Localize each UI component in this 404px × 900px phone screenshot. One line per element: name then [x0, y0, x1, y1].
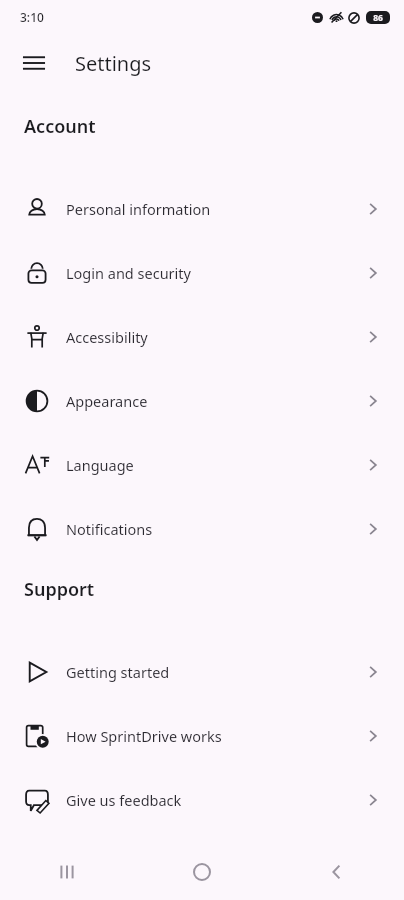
- staticText: Settings: [75, 50, 152, 77]
- staticText: Accessibility: [66, 327, 364, 347]
- staticText: 3:10: [20, 9, 44, 25]
- staticText: 86: [373, 12, 383, 24]
- button[interactable]: Home: [134, 848, 269, 896]
- staticText: Account: [24, 114, 96, 139]
- button[interactable]: Open navigation menu: [10, 39, 58, 87]
- button[interactable]: Recent apps: [0, 848, 134, 896]
- button[interactable]: Login and security: [0, 241, 404, 305]
- staticText: Login and security: [66, 263, 364, 283]
- button[interactable]: Accessibility: [0, 305, 404, 369]
- button[interactable]: Appearance: [0, 369, 404, 433]
- staticText: How SprintDrive works: [66, 726, 364, 746]
- button[interactable]: How SprintDrive works: [0, 704, 404, 768]
- button[interactable]: Personal information: [0, 177, 404, 241]
- staticText: Notifications: [66, 519, 364, 539]
- button[interactable]: Getting started: [0, 640, 404, 704]
- button[interactable]: Language: [0, 433, 404, 497]
- staticText: Give us feedback: [66, 790, 364, 810]
- staticText: Appearance: [66, 391, 364, 411]
- staticText: Personal information: [66, 199, 364, 219]
- staticText: Language: [66, 455, 364, 475]
- staticText: Support: [24, 577, 95, 602]
- staticText: Getting started: [66, 662, 364, 682]
- button[interactable]: Give us feedback: [0, 768, 404, 832]
- button[interactable]: Back: [269, 848, 404, 896]
- button[interactable]: Notifications: [0, 497, 404, 561]
